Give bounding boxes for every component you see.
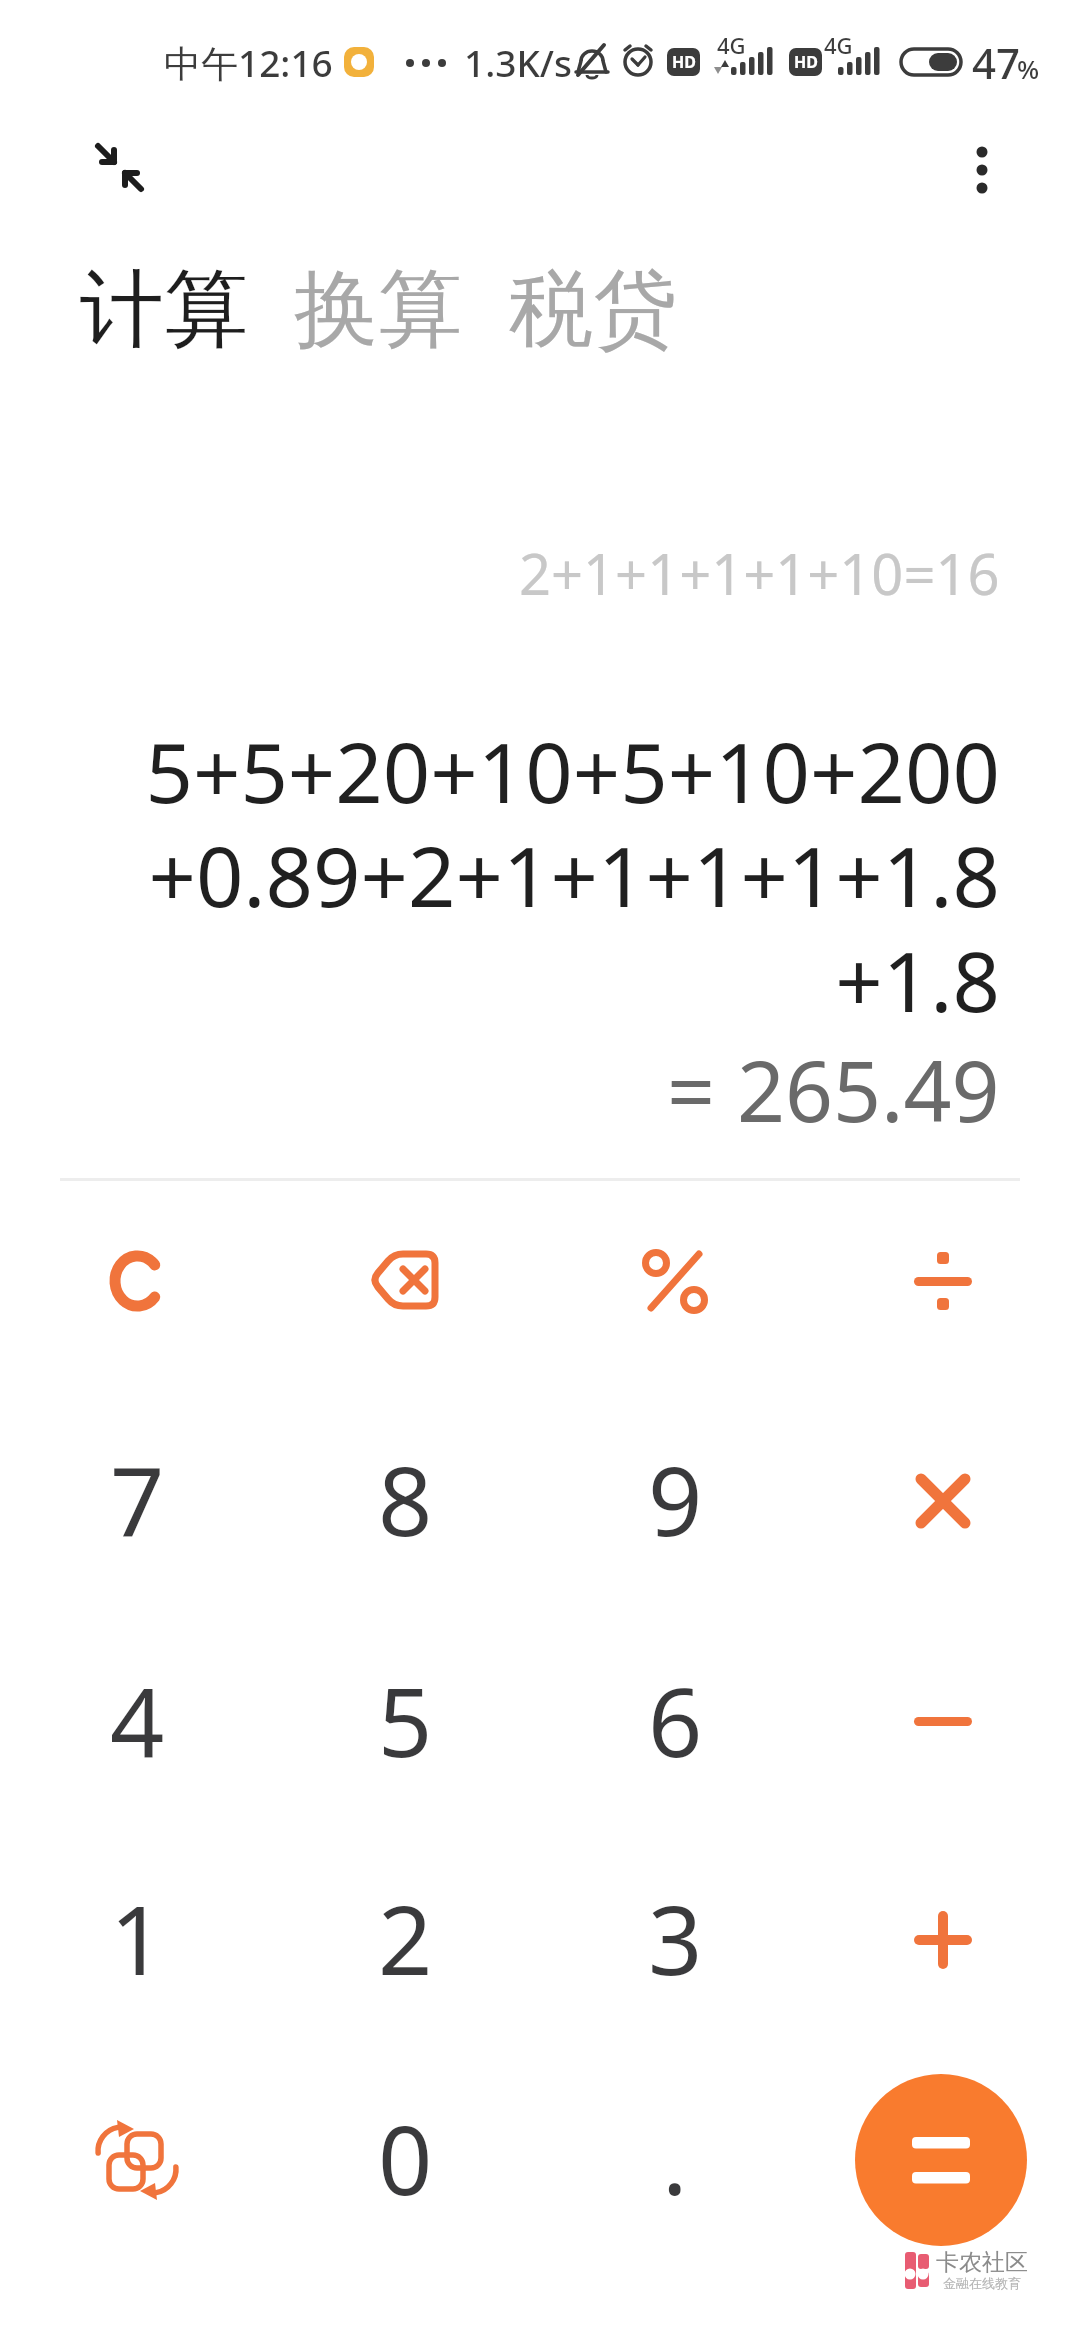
button[interactable]: 2 (305, 1845, 505, 2035)
staticText: 金融在线教育 (943, 2275, 1021, 2291)
button[interactable]: 0 (305, 2065, 505, 2255)
staticText: 中午12:16 (164, 37, 333, 88)
button[interactable]: 5 (305, 1627, 505, 1817)
button[interactable]: 3 (575, 1845, 775, 2035)
staticText: 1.3K/s (464, 37, 573, 87)
staticText: 卡农社区 (936, 2248, 1028, 2277)
staticText: 8 (378, 1434, 433, 1563)
staticText: 7 (110, 1434, 165, 1563)
button[interactable]: 9 (575, 1406, 775, 1596)
button[interactable]: . (575, 2065, 775, 2255)
button[interactable]: 换算 (294, 257, 462, 363)
staticText: . (662, 2093, 688, 2222)
staticText: HD (672, 51, 696, 73)
button[interactable] (37, 2065, 237, 2255)
button[interactable] (855, 2074, 1027, 2246)
staticText: 3 (648, 1873, 703, 2002)
button[interactable]: 税贷 (509, 257, 677, 363)
staticText: 47 (972, 34, 1021, 91)
staticText: 4G (824, 30, 853, 60)
button[interactable] (843, 1406, 1043, 1596)
staticText: 4 (110, 1655, 165, 1784)
button[interactable] (305, 1186, 505, 1376)
staticText: 6 (648, 1655, 703, 1784)
button[interactable]: 4 (37, 1627, 237, 1817)
staticText: 9 (648, 1434, 703, 1563)
staticText: 5+5+20+10+5+10+200 +0.89+2+1+1+1+1+1.8 +… (145, 714, 1000, 1037)
staticText: 2 (378, 1873, 433, 2002)
staticText: 换算 (294, 257, 462, 363)
button[interactable]: 7 (37, 1406, 237, 1596)
staticText: HD (794, 51, 818, 73)
button[interactable]: 计算 (80, 257, 248, 363)
button[interactable] (85, 133, 155, 203)
staticText: = 265.49 (667, 1032, 1000, 1146)
staticText: 1 (110, 1873, 165, 2002)
button[interactable] (843, 1845, 1043, 2035)
staticText: 5 (378, 1655, 433, 1784)
button[interactable] (37, 1186, 237, 1376)
button[interactable] (843, 1186, 1043, 1376)
staticText: 4G (717, 30, 746, 60)
staticText: 2+1+1+1+1+10=16 (519, 535, 1000, 611)
button[interactable]: 6 (575, 1627, 775, 1817)
staticText: 计算 (80, 257, 248, 363)
button[interactable]: 8 (305, 1406, 505, 1596)
button[interactable] (947, 135, 1017, 205)
button[interactable]: 1 (37, 1845, 237, 2035)
staticText: % (1017, 51, 1040, 86)
staticText: 税贷 (509, 257, 677, 363)
button[interactable] (575, 1186, 775, 1376)
button[interactable] (843, 1627, 1043, 1817)
staticText: 0 (378, 2093, 433, 2222)
